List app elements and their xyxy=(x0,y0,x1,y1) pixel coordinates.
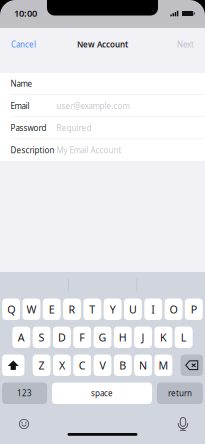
staticText: Cancel xyxy=(11,39,36,50)
button[interactable]: A xyxy=(12,326,30,348)
staticText: New Account xyxy=(77,39,128,50)
button[interactable]: S xyxy=(33,326,50,348)
button[interactable]: Y xyxy=(104,298,122,320)
button[interactable]: I xyxy=(144,298,162,320)
staticText: T xyxy=(89,302,95,316)
staticText: Description xyxy=(10,145,54,155)
button[interactable]: B xyxy=(114,354,132,376)
staticText: R xyxy=(68,302,75,316)
staticText: H xyxy=(119,330,127,344)
staticText: D xyxy=(58,330,66,344)
staticText: F xyxy=(79,330,85,344)
button[interactable]: space xyxy=(52,382,152,404)
staticText: Q xyxy=(7,302,15,316)
staticText: W xyxy=(26,302,36,316)
button[interactable]: 123 xyxy=(2,382,47,404)
staticText: user@example.com xyxy=(56,100,129,111)
button[interactable]: V xyxy=(93,354,111,376)
staticText: A xyxy=(18,330,25,344)
staticText: Password xyxy=(10,123,46,133)
staticText: Required xyxy=(56,123,91,133)
staticText: G xyxy=(98,330,106,344)
button[interactable]: Description xyxy=(0,139,205,161)
button[interactable]: C xyxy=(73,354,91,376)
button[interactable]: Q xyxy=(2,298,20,320)
button[interactable]: K xyxy=(154,326,172,348)
button[interactable]: Password xyxy=(0,117,205,139)
staticText: S xyxy=(39,330,45,344)
staticText: K xyxy=(160,330,167,344)
button[interactable]: L xyxy=(175,326,193,348)
button[interactable]: Dictation xyxy=(176,417,190,431)
button[interactable]: X xyxy=(53,354,71,376)
staticText: Z xyxy=(39,358,45,372)
staticText: E xyxy=(49,302,55,316)
button[interactable]: W xyxy=(22,298,40,320)
button[interactable]: Shift xyxy=(2,354,24,376)
button[interactable]: N xyxy=(134,354,152,376)
staticText: J xyxy=(142,330,145,344)
staticText: U xyxy=(129,302,137,316)
button[interactable]: M xyxy=(154,354,172,376)
staticText: 123 xyxy=(17,388,32,398)
staticText: O xyxy=(169,302,177,316)
staticText: space xyxy=(91,388,113,398)
button[interactable]: Email xyxy=(0,95,205,117)
button[interactable]: F xyxy=(73,326,91,348)
button[interactable]: Name xyxy=(0,73,205,94)
button[interactable]: U xyxy=(124,298,142,320)
button[interactable]: Cancel xyxy=(0,32,44,57)
staticText: Name xyxy=(10,78,32,89)
button[interactable]: G xyxy=(93,326,111,348)
button[interactable]: J xyxy=(134,326,152,348)
staticText: My Email Account xyxy=(56,145,121,155)
button[interactable]: Z xyxy=(33,354,50,376)
button[interactable]: return xyxy=(157,382,203,404)
button[interactable]: Delete xyxy=(181,354,203,376)
button[interactable]: Emoji keyboard xyxy=(17,417,31,431)
staticText: L xyxy=(181,330,187,344)
staticText: Y xyxy=(110,302,116,316)
button[interactable]: P xyxy=(185,298,203,320)
staticText: V xyxy=(99,358,105,372)
button[interactable]: T xyxy=(83,298,101,320)
button[interactable]: R xyxy=(63,298,81,320)
staticText: Next xyxy=(177,39,194,50)
staticText: P xyxy=(191,302,197,316)
staticText: I xyxy=(151,302,155,316)
staticText: 10:00 xyxy=(14,7,37,19)
staticText: return xyxy=(168,388,192,398)
staticText: N xyxy=(139,358,147,372)
staticText: C xyxy=(79,358,86,372)
button[interactable]: H xyxy=(114,326,132,348)
staticText: X xyxy=(59,358,65,372)
button[interactable]: E xyxy=(43,298,61,320)
staticText: M xyxy=(158,358,168,372)
button[interactable]: O xyxy=(165,298,182,320)
staticText: B xyxy=(119,358,126,372)
staticText: Email xyxy=(10,100,29,111)
button[interactable]: Next xyxy=(169,32,205,57)
button[interactable]: D xyxy=(53,326,71,348)
